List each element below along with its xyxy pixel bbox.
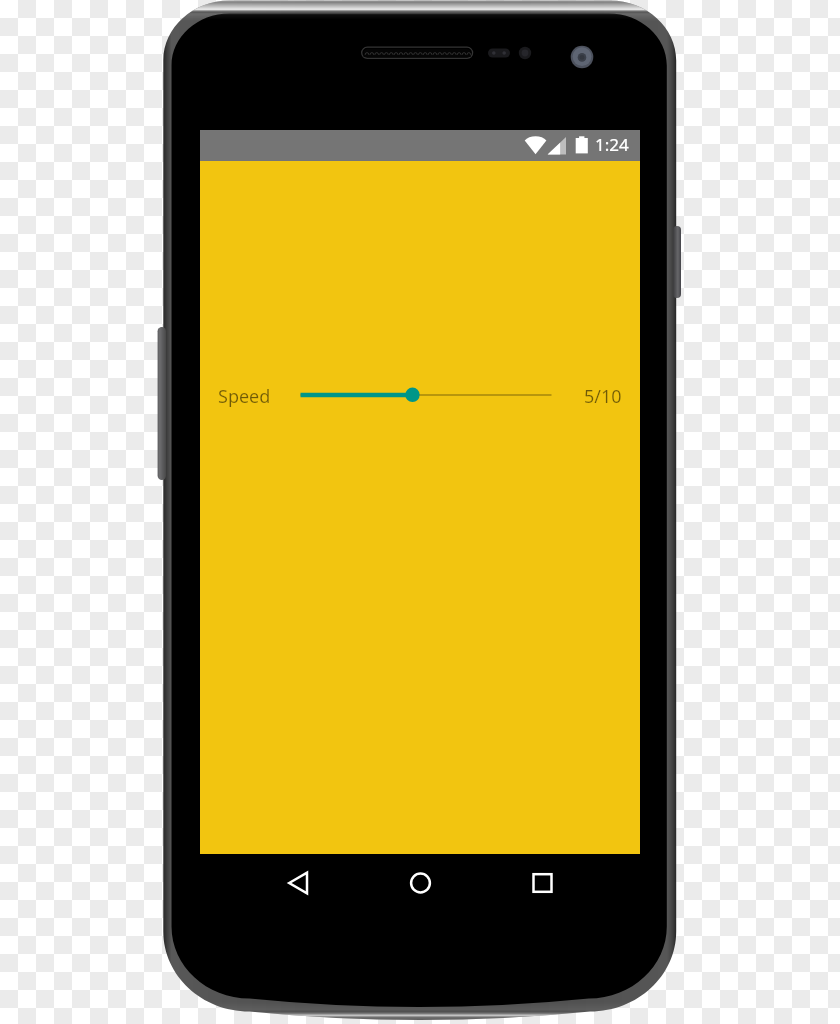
button[interactable]: Home: [391, 854, 449, 912]
staticText: Speed: [218, 384, 271, 409]
staticText: 5/10: [584, 384, 622, 409]
button[interactable]: Recent apps: [513, 854, 571, 912]
staticText: 1:24: [595, 133, 629, 156]
button[interactable]: Back: [269, 854, 327, 912]
button[interactable]: Speed slider: [292, 379, 556, 411]
